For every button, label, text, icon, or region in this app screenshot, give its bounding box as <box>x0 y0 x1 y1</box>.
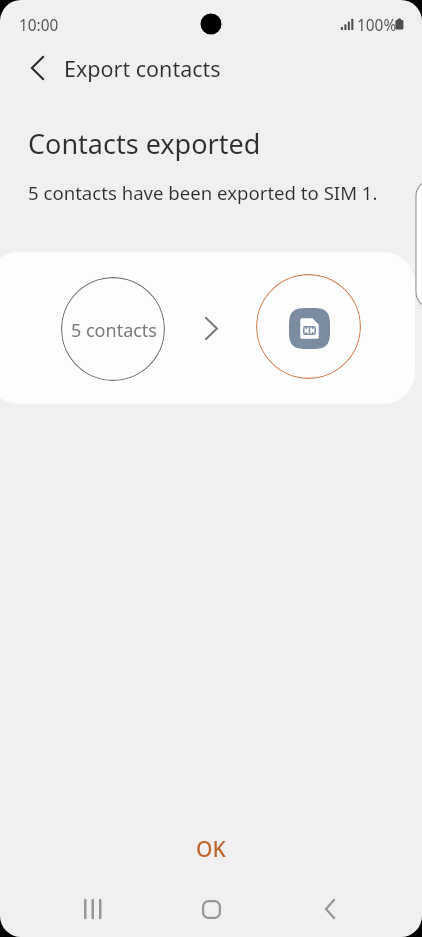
button[interactable]: Recent apps <box>63 879 123 937</box>
staticText: Contacts exported <box>28 125 261 162</box>
button[interactable]: OK <box>161 827 261 871</box>
button[interactable]: 5 contacts <box>61 277 165 381</box>
button[interactable]: Navigate up <box>14 45 59 90</box>
staticText: 100% <box>357 15 397 36</box>
staticText: 5 contacts <box>71 318 157 343</box>
button[interactable]: SIM 1 <box>256 274 361 379</box>
button[interactable]: Back <box>300 879 360 937</box>
staticText: OK <box>196 835 226 864</box>
staticText: 10:00 <box>19 15 59 36</box>
staticText: Export contacts <box>64 54 221 83</box>
staticText: 5 contacts have been exported to SIM 1. <box>28 180 378 205</box>
button[interactable]: Home <box>181 879 241 937</box>
